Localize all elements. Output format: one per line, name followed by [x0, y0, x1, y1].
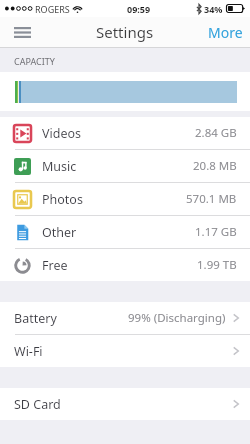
staticText: 09:59 [127, 3, 151, 15]
staticText: 99% (Discharging) [128, 310, 226, 326]
button[interactable]: SD Card [0, 388, 250, 420]
staticText: Photos [42, 191, 83, 208]
staticText: 20.8 MB [193, 158, 237, 174]
staticText: Music [42, 158, 77, 175]
button[interactable]: Battery [0, 302, 250, 334]
staticText: ROGERS [35, 3, 70, 15]
staticText: Videos [42, 125, 82, 142]
button[interactable]: Videos [0, 117, 250, 149]
staticText: 2.84 GB [195, 125, 237, 141]
button[interactable]: Music [0, 150, 250, 182]
staticText: Other [42, 224, 77, 241]
button[interactable]: More [208, 23, 243, 42]
staticText: Battery [14, 310, 57, 327]
staticText: 570.1 MB [186, 191, 237, 207]
staticText: SD Card [14, 396, 61, 413]
staticText: Settings [96, 22, 154, 42]
staticText: 34% [204, 3, 223, 15]
staticText: 1.99 TB [197, 257, 237, 273]
button[interactable]: Other [0, 216, 250, 248]
staticText: Free [42, 257, 68, 274]
staticText: Wi-Fi [14, 343, 43, 360]
staticText: 1.17 GB [195, 224, 237, 240]
button[interactable]: Wi-Fi [0, 335, 250, 367]
staticText: CAPACITY [14, 55, 55, 67]
button[interactable]: Menu [9, 19, 35, 45]
button[interactable]: Photos [0, 183, 250, 215]
button[interactable]: Free [0, 249, 250, 281]
staticText: More [208, 23, 243, 42]
